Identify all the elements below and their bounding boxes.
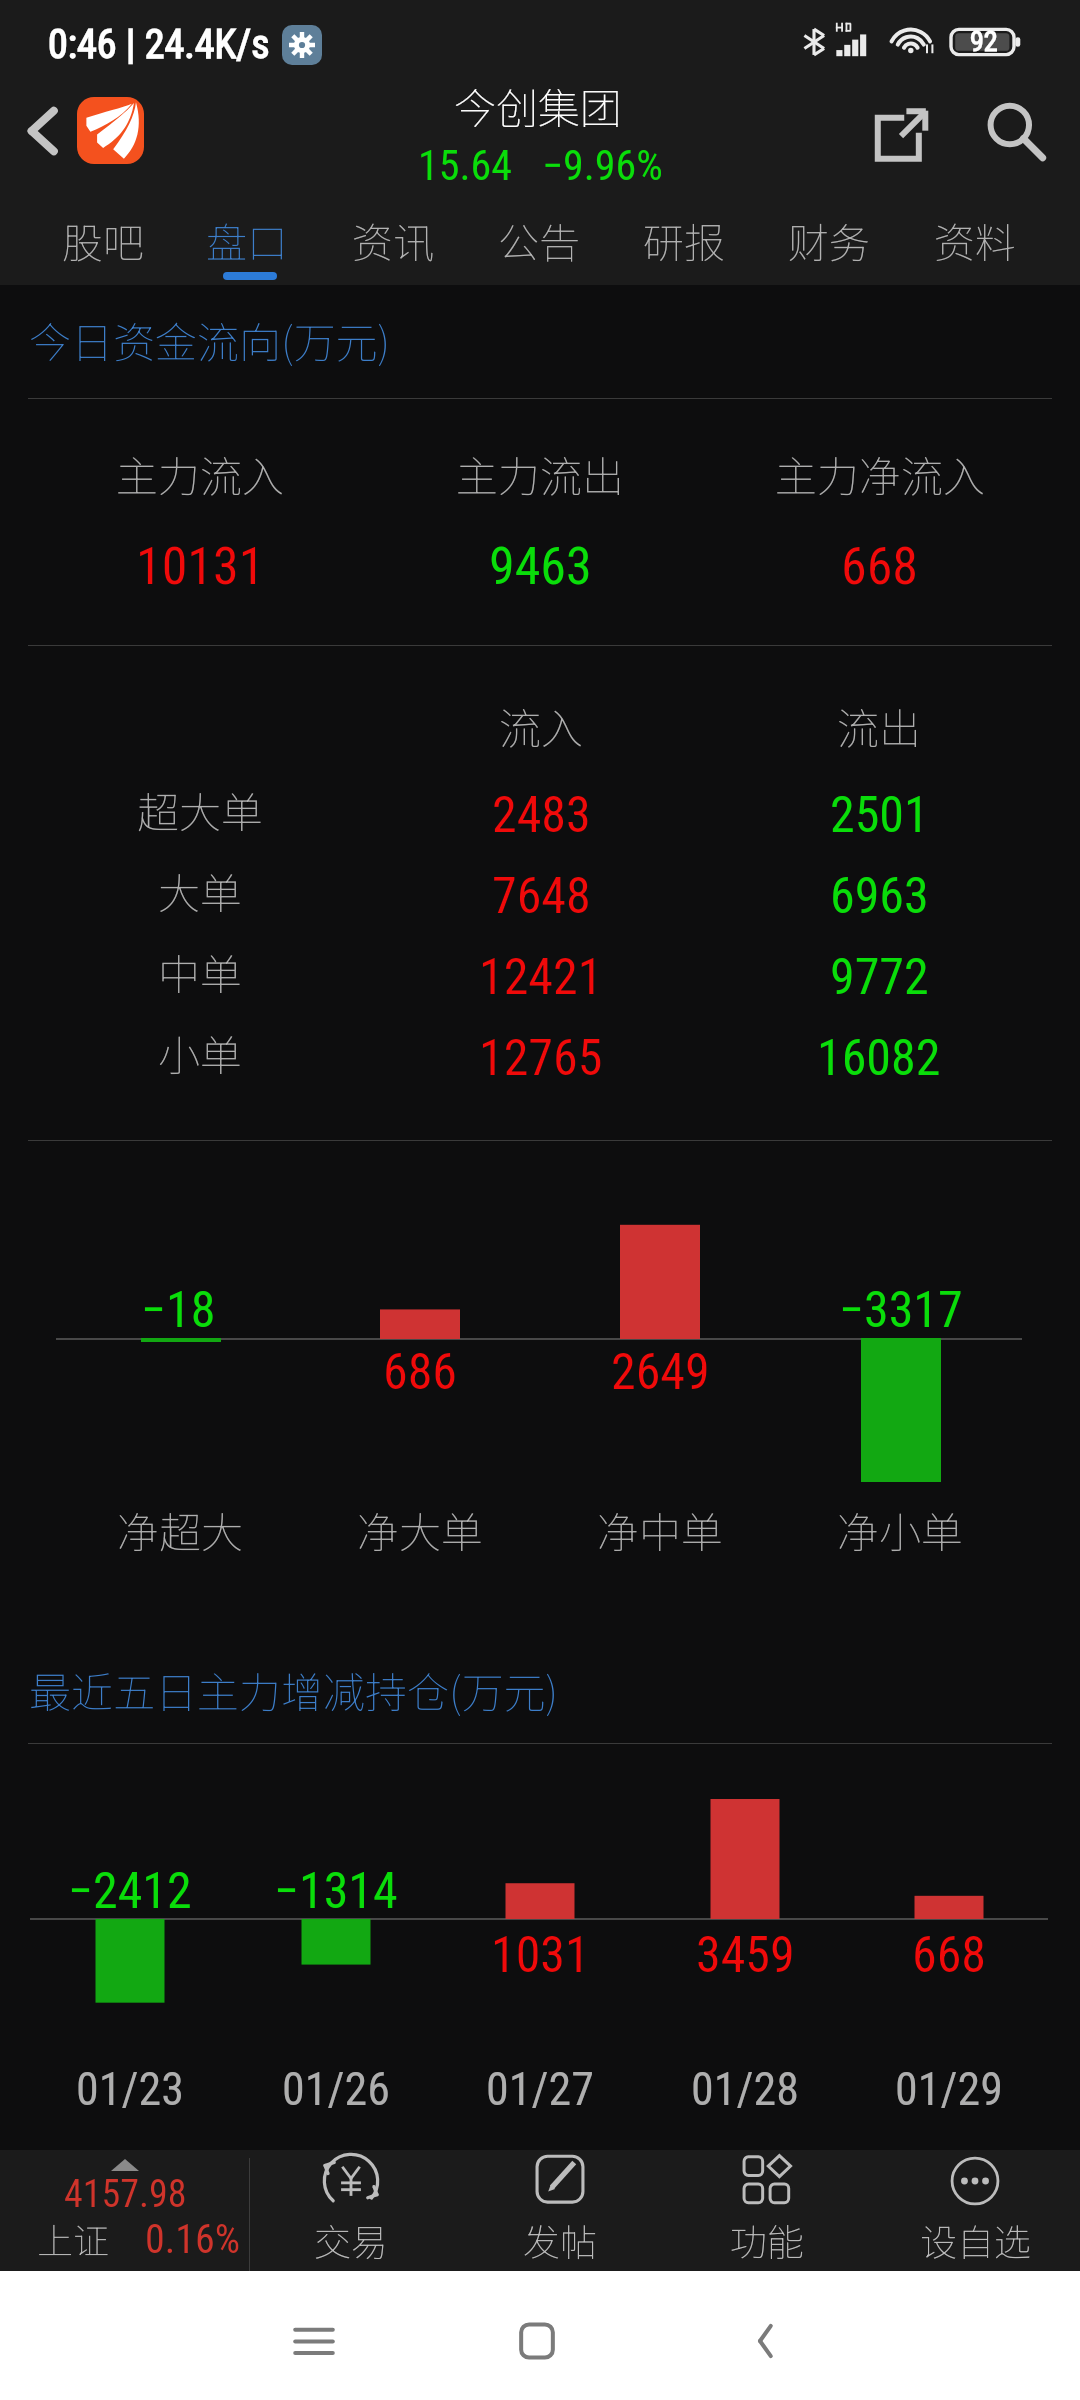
button[interactable]: 资讯 bbox=[321, 192, 465, 285]
staticText: −3317 bbox=[839, 1281, 963, 1340]
staticText: 财务 bbox=[788, 210, 870, 269]
staticText: 668 bbox=[912, 1926, 987, 1985]
staticText: 3459 bbox=[696, 1926, 795, 1985]
button[interactable]: 资料 bbox=[903, 192, 1047, 285]
button[interactable]: 最近五日主力增减持仓(万元) bbox=[0, 1620, 1080, 1723]
staticText: 大单 bbox=[158, 860, 243, 921]
staticText: 资料 bbox=[934, 210, 1016, 269]
staticText: 12421 bbox=[479, 948, 603, 1007]
staticText: 功能 bbox=[730, 2213, 804, 2267]
staticText: −9.96% bbox=[542, 141, 663, 190]
staticText: 今日资金流向(万元) bbox=[29, 309, 391, 370]
button[interactable]: App home bbox=[77, 97, 144, 164]
staticText: 设自选 bbox=[920, 2213, 1031, 2267]
staticText: 16082 bbox=[817, 1029, 941, 1088]
staticText: 01/26 bbox=[282, 2062, 390, 2116]
button[interactable]: Recents bbox=[254, 2281, 374, 2400]
staticText: 今创集团 bbox=[454, 75, 623, 136]
staticText: 12765 bbox=[479, 1029, 603, 1088]
staticText: 流出 bbox=[837, 695, 922, 756]
staticText: 中单 bbox=[158, 941, 243, 1002]
staticText: 净小单 bbox=[837, 1499, 964, 1560]
staticText: 最近五日主力增减持仓(万元) bbox=[29, 1659, 559, 1720]
button[interactable] bbox=[0, 938, 1080, 1019]
button[interactable] bbox=[0, 400, 360, 644]
button[interactable]: 财务 bbox=[757, 192, 901, 285]
staticText: 净中单 bbox=[597, 1499, 724, 1560]
staticText: 超大单 bbox=[137, 779, 264, 840]
staticText: 92 bbox=[970, 25, 998, 58]
button[interactable]: Home bbox=[477, 2281, 597, 2400]
staticText: 01/29 bbox=[895, 2062, 1003, 2116]
staticText: 研报 bbox=[643, 210, 725, 269]
button[interactable]: 交易 bbox=[251, 2150, 451, 2271]
button[interactable] bbox=[720, 400, 1080, 644]
staticText: 01/28 bbox=[691, 2062, 799, 2116]
staticText: 交易 bbox=[314, 2213, 388, 2267]
staticText: 上证 bbox=[37, 2212, 110, 2264]
staticText: 686 bbox=[383, 1343, 458, 1402]
staticText: 主力流出 bbox=[456, 443, 625, 504]
staticText: 主力流入 bbox=[116, 443, 285, 504]
staticText: 9772 bbox=[830, 948, 929, 1007]
staticText: 4157.98 bbox=[64, 2172, 187, 2217]
button[interactable]: Search bbox=[972, 89, 1060, 177]
button[interactable]: 股吧 bbox=[31, 192, 175, 285]
staticText: 盘口 bbox=[206, 210, 288, 269]
staticText: −1314 bbox=[274, 1862, 398, 1921]
staticText: 0:46 | 24.4K/s bbox=[48, 21, 270, 68]
staticText: 小单 bbox=[158, 1022, 243, 1083]
staticText: 发帖 bbox=[523, 2213, 597, 2267]
button[interactable] bbox=[0, 857, 1080, 938]
staticText: −2412 bbox=[68, 1862, 192, 1921]
button[interactable]: Share bbox=[857, 91, 945, 179]
staticText: 0.16% bbox=[145, 2216, 241, 2263]
staticText: 668 bbox=[841, 536, 919, 597]
staticText: 净超大 bbox=[117, 1499, 244, 1560]
staticText: 净大单 bbox=[357, 1499, 484, 1560]
staticText: 流入 bbox=[499, 695, 584, 756]
button[interactable]: 盘口 bbox=[175, 192, 319, 285]
button[interactable] bbox=[0, 776, 1080, 857]
staticText: 9463 bbox=[489, 536, 592, 597]
staticText: 10131 bbox=[136, 536, 265, 597]
staticText: 2649 bbox=[611, 1343, 710, 1402]
staticText: 15.64 bbox=[418, 141, 513, 190]
staticText: 01/23 bbox=[76, 2062, 184, 2116]
button[interactable]: 发帖 bbox=[460, 2150, 660, 2271]
button[interactable]: 功能 bbox=[667, 2150, 867, 2271]
button[interactable]: Back bbox=[7, 96, 77, 166]
staticText: −18 bbox=[141, 1281, 216, 1340]
staticText: 股吧 bbox=[62, 210, 144, 269]
staticText: 主力净流入 bbox=[775, 443, 986, 504]
staticText: 01/27 bbox=[486, 2062, 594, 2116]
staticText: 资讯 bbox=[352, 210, 434, 269]
button[interactable]: 公告 bbox=[467, 192, 611, 285]
staticText: 2483 bbox=[492, 786, 591, 845]
button[interactable] bbox=[360, 400, 720, 644]
button[interactable]: Back bbox=[706, 2281, 826, 2400]
button[interactable] bbox=[0, 1019, 1080, 1100]
button[interactable]: Network speed settings bbox=[282, 25, 322, 65]
button[interactable]: 今日资金流向(万元) bbox=[0, 285, 1080, 398]
staticText: 1031 bbox=[491, 1926, 590, 1985]
staticText: 6963 bbox=[830, 867, 929, 926]
staticText: 2501 bbox=[830, 786, 929, 845]
button[interactable]: 研报 bbox=[612, 192, 756, 285]
staticText: 公告 bbox=[498, 210, 580, 269]
button[interactable]: 设自选 bbox=[875, 2150, 1075, 2271]
staticText: 7648 bbox=[492, 867, 591, 926]
button[interactable] bbox=[0, 2150, 248, 2271]
